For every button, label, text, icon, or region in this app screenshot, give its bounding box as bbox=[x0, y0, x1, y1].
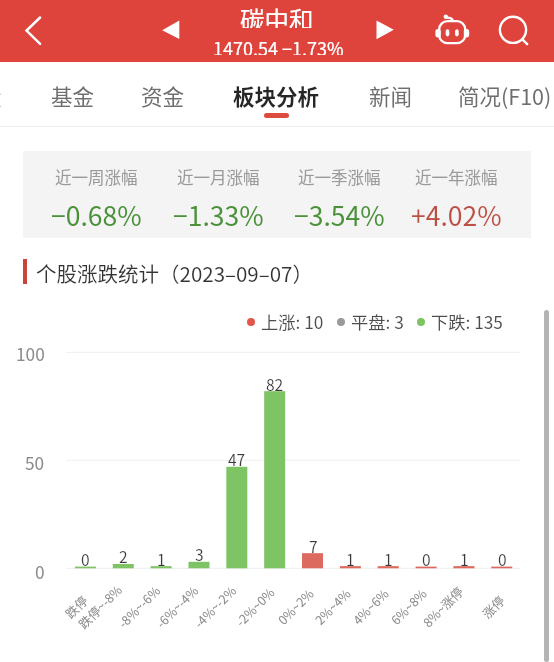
staticText: -2%~0% bbox=[231, 582, 278, 630]
staticText: 近一周涨幅 bbox=[55, 165, 138, 189]
staticText: 2 bbox=[119, 545, 128, 567]
staticText: +4.02% bbox=[411, 195, 502, 229]
button[interactable]: Back bbox=[10, 6, 60, 56]
button[interactable]: Search bbox=[490, 5, 540, 55]
staticText: 跌停~-8% bbox=[74, 580, 125, 632]
staticText: 4%~6% bbox=[348, 584, 392, 628]
staticText: 平盘: 3 bbox=[351, 309, 404, 334]
staticText: 资金 bbox=[141, 80, 185, 111]
staticText: 新闻 bbox=[369, 80, 413, 111]
staticText: 0%~2% bbox=[273, 584, 317, 628]
staticText: -8%~-6% bbox=[113, 581, 164, 631]
staticText: 简况(F10) bbox=[458, 80, 552, 111]
staticText: -6%~-4% bbox=[151, 581, 202, 631]
staticText: 50 bbox=[25, 450, 45, 475]
staticText: 基金 bbox=[51, 80, 95, 111]
button[interactable]: Previous sector bbox=[152, 11, 192, 51]
staticText: 3 bbox=[195, 543, 204, 565]
staticText: -4%~-2% bbox=[189, 581, 240, 631]
staticText: 1 bbox=[346, 548, 355, 570]
staticText: 100 bbox=[16, 341, 45, 366]
button[interactable]: 资金 bbox=[108, 63, 218, 126]
staticText: 0 bbox=[498, 548, 507, 570]
staticText: 1470.54 −1.73% bbox=[213, 35, 344, 55]
button[interactable]: 板块分析 bbox=[221, 63, 331, 126]
button[interactable]: 新闻 bbox=[336, 63, 446, 126]
staticText: 上涨: 10 bbox=[261, 309, 324, 334]
staticText: 1 bbox=[157, 548, 166, 570]
staticText: 47 bbox=[228, 448, 246, 470]
staticText: 1 bbox=[460, 548, 469, 570]
staticText: 0 bbox=[35, 559, 45, 584]
staticText: 近一月涨幅 bbox=[177, 165, 260, 189]
button[interactable]: 基金 bbox=[18, 63, 128, 126]
staticText: 股 bbox=[0, 80, 2, 111]
button[interactable]: 简况(F10) bbox=[450, 63, 554, 126]
staticText: 个股涨跌统计（2023–09–07） bbox=[36, 258, 313, 286]
staticText: −0.68% bbox=[51, 195, 142, 229]
staticText: 板块分析 bbox=[233, 80, 320, 111]
staticText: 0 bbox=[422, 548, 431, 570]
staticText: 近一季涨幅 bbox=[298, 165, 381, 189]
button[interactable]: 近一周涨幅 bbox=[23, 151, 531, 238]
staticText: 8%~涨停 bbox=[418, 582, 467, 630]
button[interactable]: 下跌: 135 bbox=[417, 309, 503, 334]
button[interactable]: Next sector bbox=[370, 10, 410, 50]
staticText: −3.54% bbox=[294, 195, 385, 229]
staticText: 下跌: 135 bbox=[431, 309, 503, 334]
button[interactable]: AI assistant bbox=[430, 8, 474, 52]
button[interactable]: 上涨: 10 bbox=[247, 309, 324, 334]
button[interactable]: 碳中和 bbox=[186, 0, 368, 62]
staticText: 碳中和 bbox=[240, 2, 314, 28]
staticText: 0 bbox=[81, 548, 90, 570]
staticText: 2%~4% bbox=[310, 584, 354, 628]
staticText: 6%~8% bbox=[386, 584, 430, 628]
button[interactable]: 个股涨跌统计（2023–09–07） bbox=[36, 258, 313, 286]
staticText: 涨停 bbox=[477, 590, 508, 621]
staticText: 1 bbox=[384, 548, 393, 570]
button[interactable]: 平盘: 3 bbox=[337, 309, 404, 334]
staticText: −1.33% bbox=[173, 195, 264, 229]
staticText: 7 bbox=[309, 535, 318, 557]
staticText: 82 bbox=[266, 373, 284, 395]
staticText: 近一年涨幅 bbox=[415, 165, 498, 189]
staticText: 跌停 bbox=[60, 590, 91, 621]
